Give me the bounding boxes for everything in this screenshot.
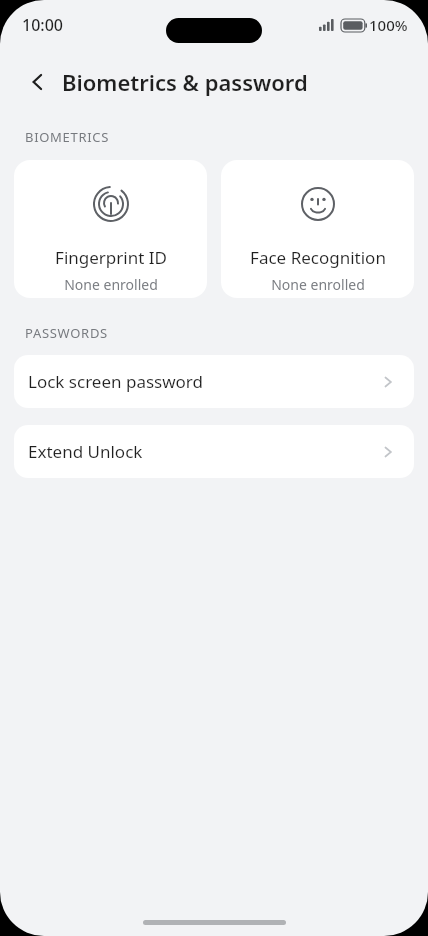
staticText: None enrolled: [271, 275, 365, 294]
staticText: Biometrics & password: [62, 67, 308, 97]
staticText: 100%: [369, 15, 408, 35]
staticText: None enrolled: [64, 275, 158, 294]
button[interactable]: Lock screen password: [14, 355, 414, 408]
staticText: 10:00: [22, 14, 63, 36]
button[interactable]: Fingerprint ID: [14, 160, 207, 298]
staticText: BIOMETRICS: [25, 128, 110, 146]
button[interactable]: Back: [22, 66, 54, 98]
button[interactable]: Extend Unlock: [14, 425, 414, 478]
staticText: Fingerprint ID: [55, 246, 167, 269]
button[interactable]: Face Recognition: [221, 160, 414, 298]
staticText: Face Recognition: [250, 246, 386, 269]
staticText: Lock screen password: [28, 370, 380, 393]
staticText: Extend Unlock: [28, 440, 380, 463]
staticText: PASSWORDS: [25, 324, 108, 342]
